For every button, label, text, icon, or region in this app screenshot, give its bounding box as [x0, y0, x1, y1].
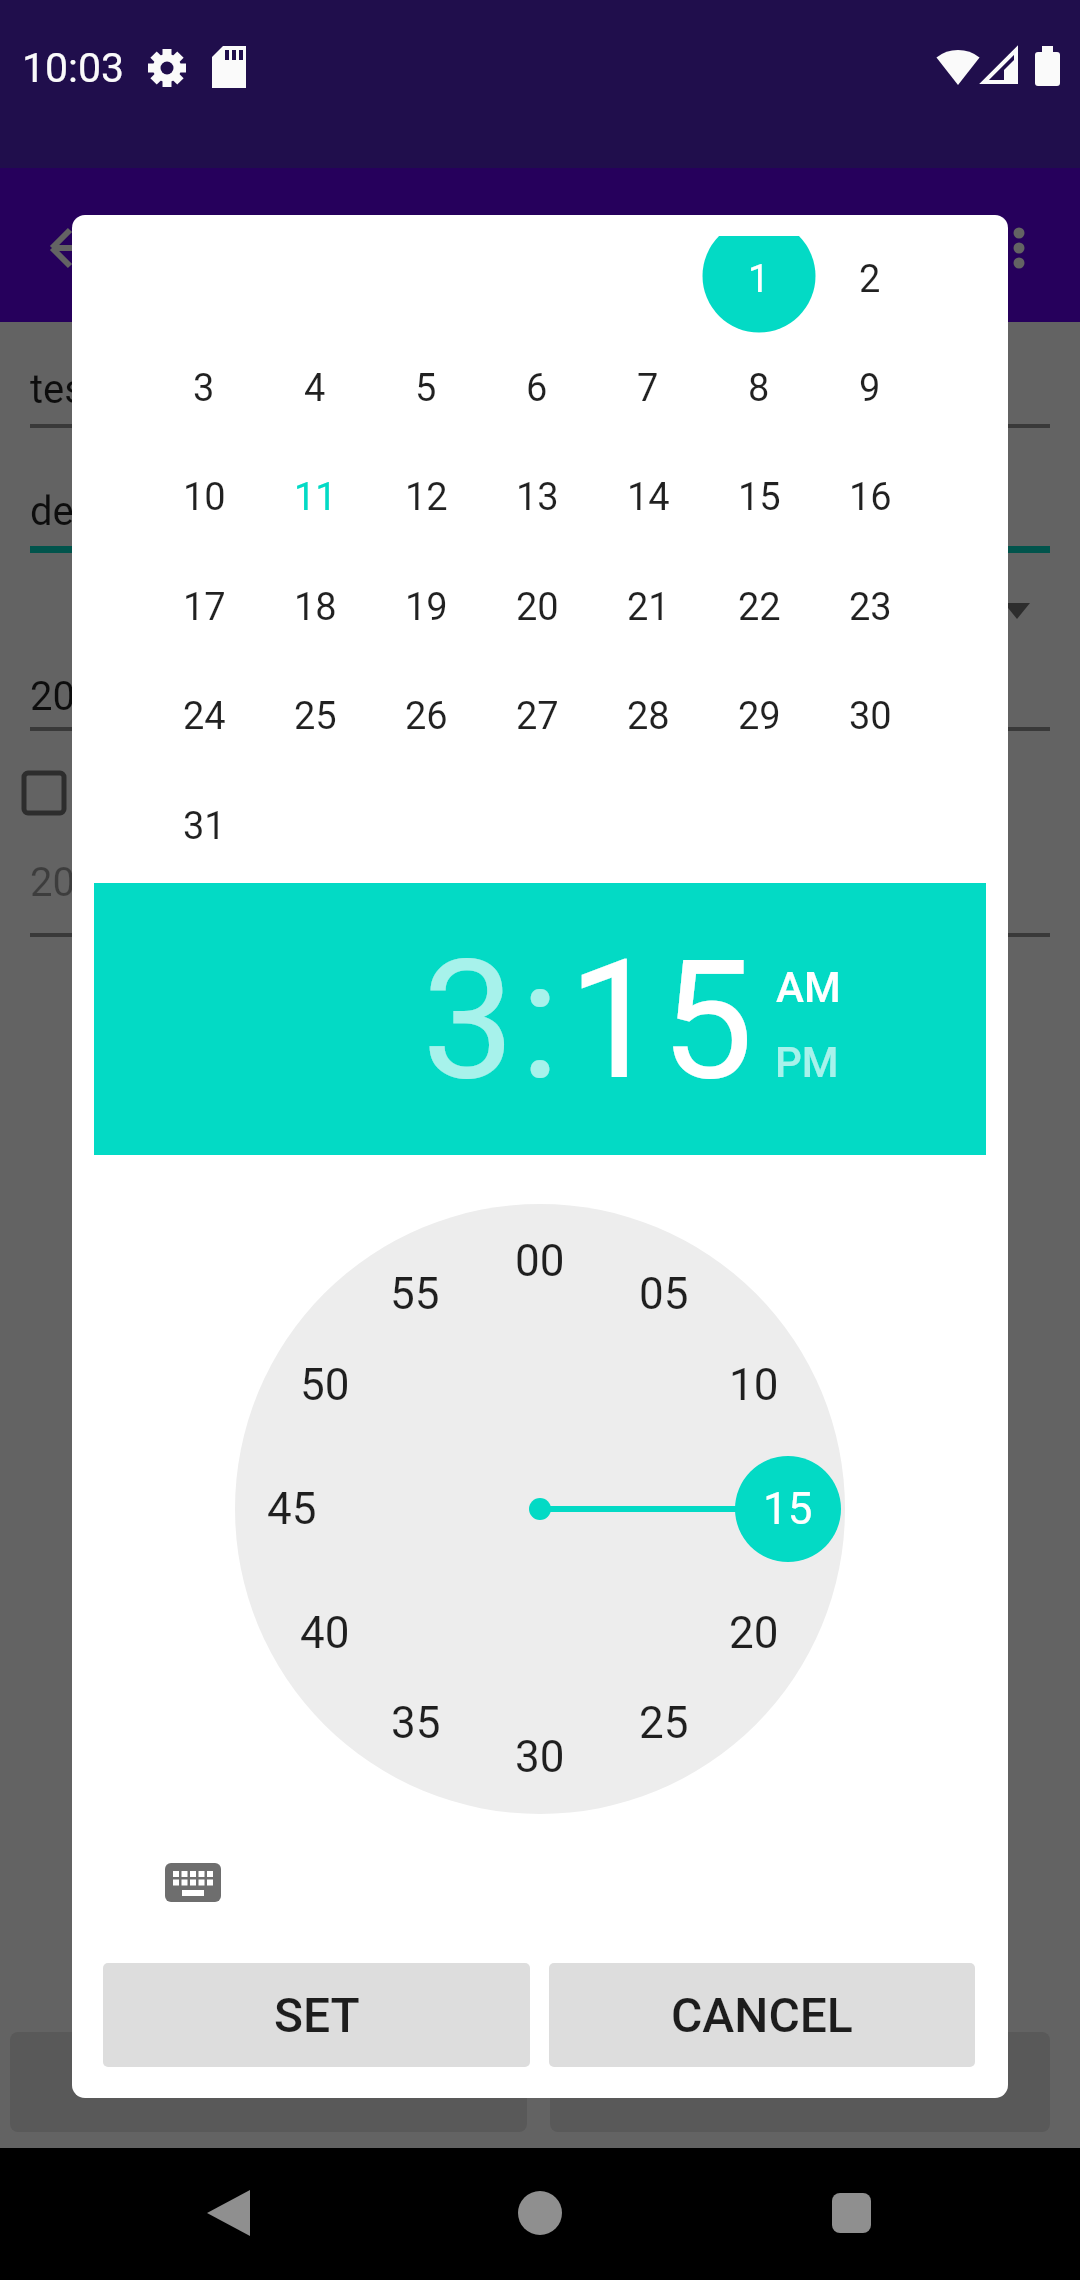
staticText: 10	[729, 1359, 779, 1411]
button[interactable]: 11	[263, 445, 367, 549]
staticText: PM	[775, 1038, 839, 1087]
button[interactable]: 00	[485, 1206, 595, 1316]
button[interactable]: 25	[263, 664, 367, 768]
button[interactable]: 2	[818, 227, 922, 331]
staticText: description	[30, 488, 229, 535]
button[interactable]: 40	[270, 1578, 380, 1688]
staticText: 29	[738, 694, 781, 739]
staticText: test	[30, 366, 99, 413]
button[interactable]: 10	[699, 1330, 809, 1440]
button[interactable]: 20	[485, 555, 589, 659]
staticText: 15	[763, 1483, 813, 1535]
button[interactable]: SET	[103, 1963, 530, 2067]
staticText: 05	[639, 1268, 689, 1320]
button[interactable]: 24	[152, 664, 256, 768]
button[interactable]: 12	[374, 445, 478, 549]
button[interactable]	[165, 1863, 221, 1902]
staticText: 55	[390, 1268, 440, 1320]
staticText: 45	[267, 1483, 317, 1535]
button[interactable]	[832, 2193, 871, 2233]
button[interactable]	[205, 2189, 252, 2237]
staticText: 50	[300, 1359, 350, 1411]
button[interactable]: 26	[374, 664, 478, 768]
staticText: 2023-12-01	[30, 673, 232, 720]
staticText: 27	[516, 694, 559, 739]
staticText: 24	[183, 694, 226, 739]
button[interactable]: 28	[596, 664, 700, 768]
button[interactable]: 15	[707, 445, 811, 549]
button[interactable]: 30	[485, 1702, 595, 1812]
button[interactable]: 29	[707, 664, 811, 768]
staticText: 1	[748, 257, 770, 302]
button[interactable]	[518, 2191, 562, 2235]
button[interactable]: PM	[727, 1027, 887, 1097]
button[interactable]: 17	[152, 555, 256, 659]
staticText: 35	[391, 1697, 441, 1749]
button[interactable]: 3	[268, 860, 668, 1180]
button[interactable]	[735, 1456, 841, 1562]
staticText: 20	[729, 1607, 779, 1659]
staticText: 20:03	[30, 859, 130, 906]
button[interactable]: 8	[707, 336, 811, 440]
button[interactable]: 30	[818, 664, 922, 768]
button[interactable]: 21	[596, 555, 700, 659]
staticText: 3	[422, 924, 515, 1117]
button[interactable]: 22	[707, 555, 811, 659]
button[interactable]: 4	[263, 336, 367, 440]
staticText: :	[520, 924, 560, 1117]
staticText: SET	[274, 1987, 360, 2043]
button[interactable]: 50	[270, 1330, 380, 1440]
staticText: 20	[516, 585, 559, 630]
staticText: 5	[415, 366, 437, 411]
staticText: 15	[568, 924, 754, 1117]
staticText: AM	[776, 963, 841, 1012]
staticText: 12	[405, 475, 448, 520]
button[interactable]: CANCEL	[549, 1963, 975, 2067]
button[interactable]: 3	[152, 336, 256, 440]
button[interactable]: 10	[152, 445, 256, 549]
button[interactable]: 9	[818, 336, 922, 440]
button[interactable]: 14	[596, 445, 700, 549]
staticText: 6	[526, 366, 548, 411]
staticText: 30	[849, 694, 892, 739]
staticText: 31	[183, 804, 226, 849]
button[interactable]: 15	[461, 860, 861, 1180]
staticText: 00	[515, 1235, 565, 1287]
button[interactable]: 7	[596, 336, 700, 440]
button[interactable]: 6	[485, 336, 589, 440]
staticText: 26	[405, 694, 448, 739]
staticText: 15	[738, 475, 781, 520]
button[interactable]: 31	[152, 774, 256, 878]
button[interactable]: 18	[263, 555, 367, 659]
button[interactable]: 23	[818, 555, 922, 659]
staticText: 3	[193, 366, 215, 411]
button[interactable]: 5	[374, 336, 478, 440]
staticText: 28	[627, 694, 670, 739]
staticText: CANCEL	[671, 1987, 853, 2043]
staticText: 8	[748, 366, 770, 411]
button[interactable]: 13	[485, 445, 589, 549]
button[interactable]: 55	[360, 1239, 470, 1349]
staticText: 16	[849, 475, 892, 520]
staticText: 14	[627, 475, 670, 520]
staticText: 17	[183, 585, 226, 630]
button[interactable]: 16	[818, 445, 922, 549]
button[interactable]: 27	[485, 664, 589, 768]
button[interactable]: 35	[361, 1668, 471, 1778]
staticText: 40	[300, 1607, 350, 1659]
button[interactable]	[702, 236, 816, 333]
staticText: 2	[859, 257, 881, 302]
staticText: 19	[405, 585, 448, 630]
button[interactable]: 05	[609, 1239, 719, 1349]
staticText: 30	[515, 1731, 565, 1783]
button[interactable]: 19	[374, 555, 478, 659]
button[interactable]: 45	[237, 1454, 347, 1564]
staticText: 10	[183, 475, 226, 520]
staticText: 23	[849, 585, 892, 630]
staticText: 25	[639, 1697, 689, 1749]
staticText: 11	[294, 475, 337, 520]
button[interactable]: AM	[728, 952, 888, 1022]
button[interactable]: 25	[609, 1668, 719, 1778]
button[interactable]: 20	[699, 1578, 809, 1688]
staticText: 4	[304, 366, 326, 411]
